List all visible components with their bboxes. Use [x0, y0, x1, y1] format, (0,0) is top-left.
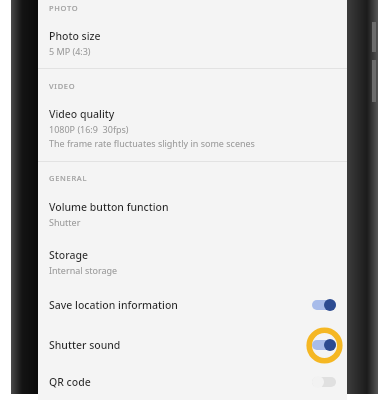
other: Shutter sound: [305, 326, 343, 364]
button[interactable]: Video quality: [38, 91, 347, 151]
staticText: Photo size: [49, 29, 101, 43]
staticText: Shutter: [49, 216, 81, 228]
staticText: Storage: [49, 248, 88, 262]
button[interactable]: Volume button function: [38, 183, 347, 230]
other: Save location information: [305, 286, 343, 324]
staticText: PHOTO: [49, 3, 79, 13]
staticText: Save location information: [49, 298, 178, 312]
staticText: Internal storage: [49, 264, 118, 276]
staticText: Shutter sound: [49, 338, 121, 352]
button[interactable]: Storage: [38, 230, 347, 278]
staticText: GENERAL: [49, 173, 88, 183]
staticText: VIDEO: [49, 81, 76, 91]
button[interactable]: QR code: [38, 366, 347, 400]
staticText: 5 MP (4:3): [49, 45, 91, 57]
staticText: Video quality: [49, 107, 115, 121]
other: QR code: [305, 366, 343, 398]
button[interactable]: Photo size: [38, 13, 347, 59]
staticText: 1080P (16:9 30fps): [49, 123, 129, 135]
button[interactable]: Save location information: [38, 278, 347, 326]
staticText: Volume button function: [49, 200, 169, 214]
staticText: QR code: [49, 375, 91, 389]
staticText: The frame rate fluctuates slightly in so…: [49, 137, 255, 149]
button[interactable]: Shutter sound: [38, 326, 347, 366]
